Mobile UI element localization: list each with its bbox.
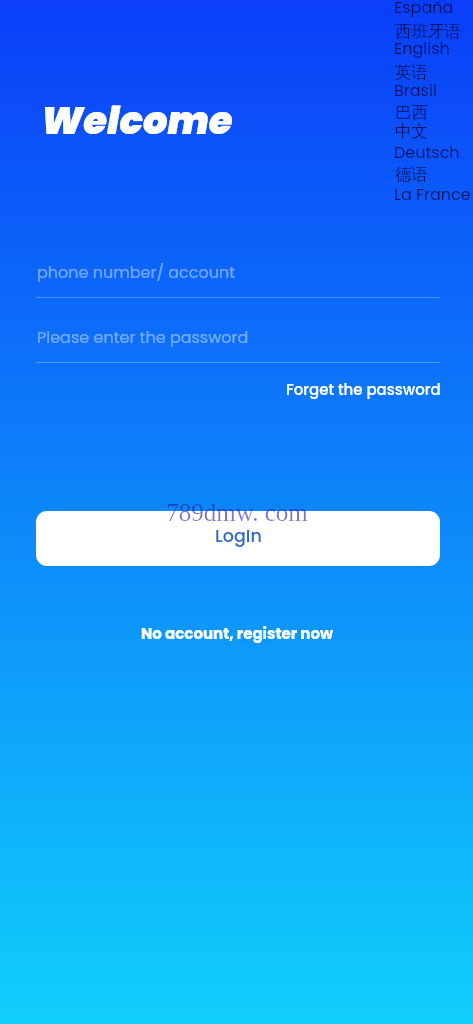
button[interactable]: La France: [394, 183, 471, 205]
button[interactable]: LogIn: [36, 511, 440, 566]
staticText: LogIn: [215, 524, 262, 549]
button[interactable]: Deutsch: [394, 141, 460, 163]
staticText: 德语: [395, 164, 428, 185]
button[interactable]: Please enter the password: [36, 320, 440, 363]
staticText: La France: [394, 183, 471, 205]
button[interactable]: 巴西: [395, 102, 428, 123]
staticText: Please enter the password: [37, 326, 249, 348]
button[interactable]: Brasil: [394, 79, 437, 101]
button[interactable]: English: [394, 37, 450, 59]
staticText: 789dmw. com: [166, 499, 308, 527]
button[interactable]: 英语: [395, 62, 428, 83]
button[interactable]: phone number/ account: [36, 255, 440, 298]
button[interactable]: No account, register now: [125, 615, 349, 652]
staticText: Forget the password: [286, 379, 441, 400]
staticText: 巴西: [395, 102, 428, 123]
staticText: 中文: [395, 121, 428, 142]
staticText: English: [394, 37, 450, 59]
staticText: Brasil: [394, 79, 437, 101]
button[interactable]: 西班牙语: [395, 21, 461, 42]
staticText: 英语: [395, 62, 428, 83]
button[interactable]: Forget the password: [278, 371, 449, 408]
staticText: España: [394, 0, 454, 18]
button[interactable]: España: [394, 0, 454, 18]
button[interactable]: 德语: [395, 164, 428, 185]
staticText: 西班牙语: [395, 21, 461, 42]
staticText: No account, register now: [141, 623, 333, 644]
staticText: Welcome: [41, 94, 233, 148]
button[interactable]: 中文: [395, 121, 428, 142]
staticText: phone number/ account: [37, 261, 236, 283]
staticText: Deutsch: [394, 141, 460, 163]
